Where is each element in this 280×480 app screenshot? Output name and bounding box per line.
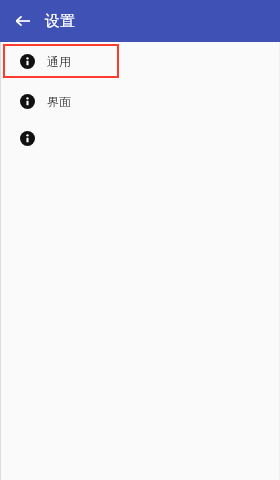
button[interactable]: 信息 [0, 123, 280, 153]
button[interactable]: 返回 [8, 6, 38, 36]
button[interactable]: 通用 [0, 46, 280, 76]
staticText: 界面 [47, 94, 71, 109]
staticText: 设置 [45, 12, 75, 31]
staticText: 通用 [47, 54, 71, 69]
button[interactable]: 界面 [0, 86, 280, 116]
